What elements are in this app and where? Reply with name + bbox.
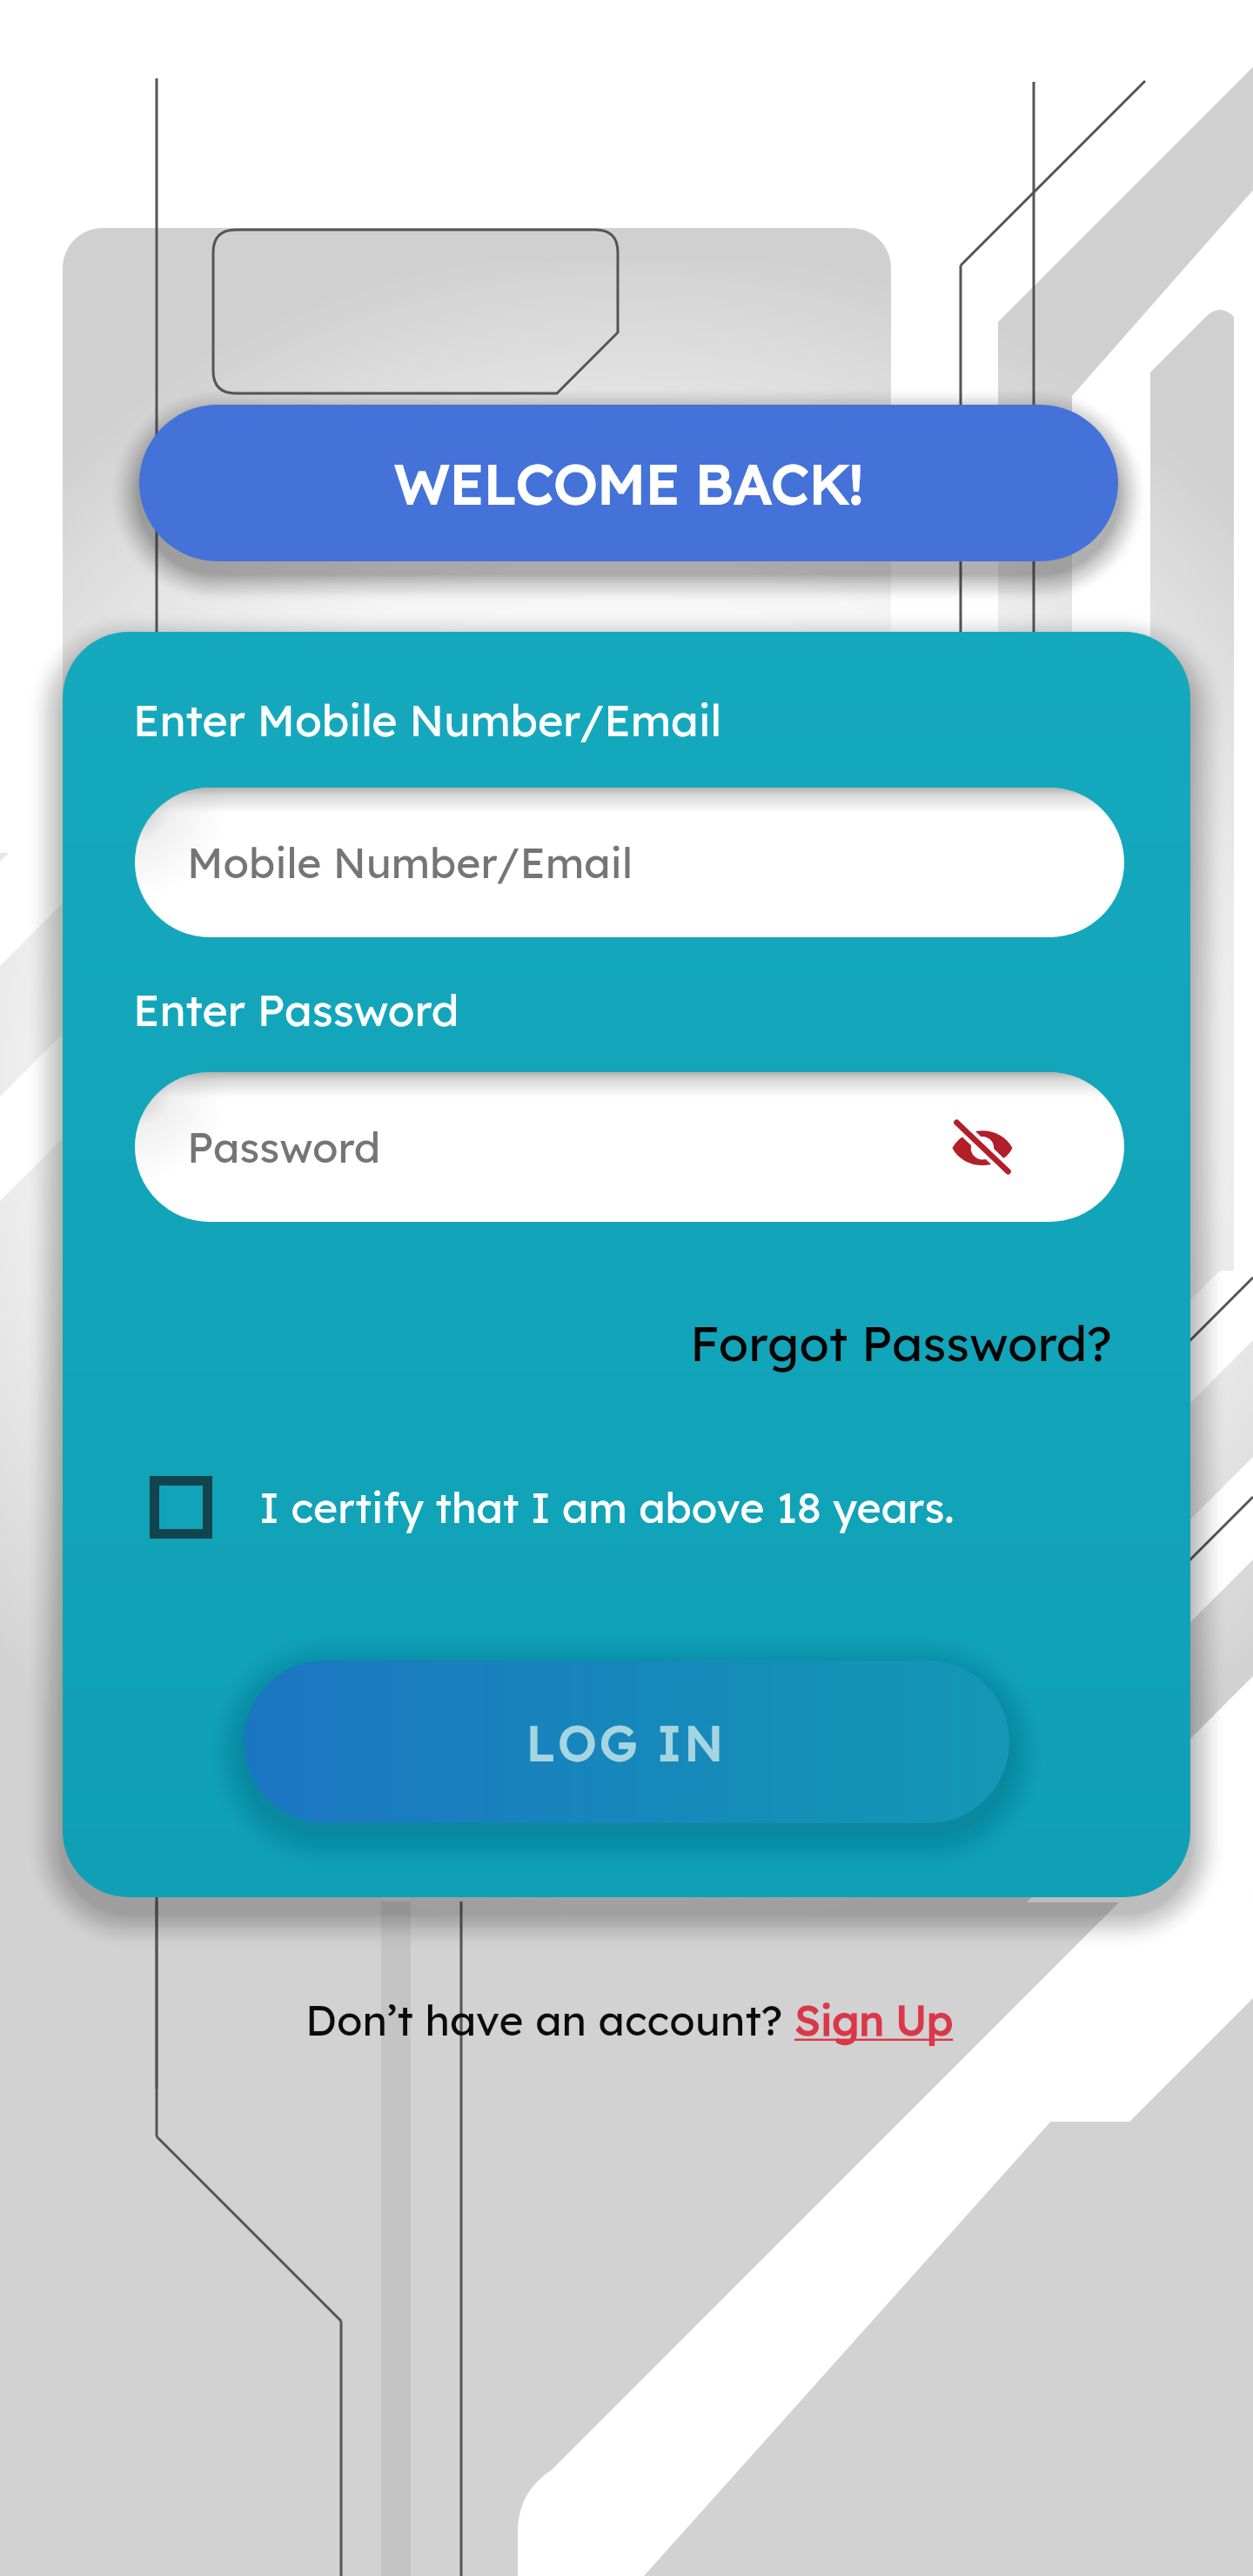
staticText: Enter Mobile Number/Email (133, 693, 722, 748)
button[interactable]: Forgot Password? (690, 1312, 1112, 1373)
button[interactable]: LOG IN (244, 1660, 1009, 1823)
staticText: I certify that I am above 18 years. (259, 1481, 955, 1533)
staticText: Enter Password (133, 983, 459, 1037)
button[interactable]: I certify that I am above 18 years (150, 1476, 212, 1539)
button[interactable]: Toggle password visibility (939, 1104, 1026, 1191)
button[interactable]: WELCOME BACK! (139, 405, 1118, 561)
staticText: LOG IN (526, 1712, 727, 1773)
staticText: WELCOME BACK! (394, 448, 863, 518)
staticText: Password (187, 1121, 381, 1173)
button[interactable]: Mobile Number/Email (135, 788, 1124, 937)
button[interactable]: Sign Up (794, 1994, 954, 2046)
staticText: Forgot Password? (690, 1312, 1112, 1373)
staticText: Mobile Number/Email (187, 836, 633, 889)
button[interactable]: Password (135, 1072, 1124, 1222)
staticText: Don’t have an account? (305, 1994, 794, 2046)
